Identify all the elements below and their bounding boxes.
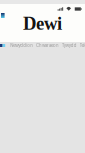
button[interactable]: Teledu — [78, 43, 85, 48]
button[interactable]: Tywydd — [60, 43, 78, 48]
button[interactable]: Dewi home — [1, 13, 5, 18]
staticText: Dewi — [23, 13, 62, 34]
staticText: Teledu — [80, 43, 85, 48]
staticText: Tywydd — [62, 43, 77, 48]
button[interactable]: Chwaraeon — [35, 43, 60, 48]
button[interactable]: Home — [0, 44, 5, 47]
button[interactable]: Newyddion — [9, 43, 35, 48]
staticText: Newyddion — [10, 43, 33, 48]
staticText: Chwaraeon — [36, 43, 59, 48]
